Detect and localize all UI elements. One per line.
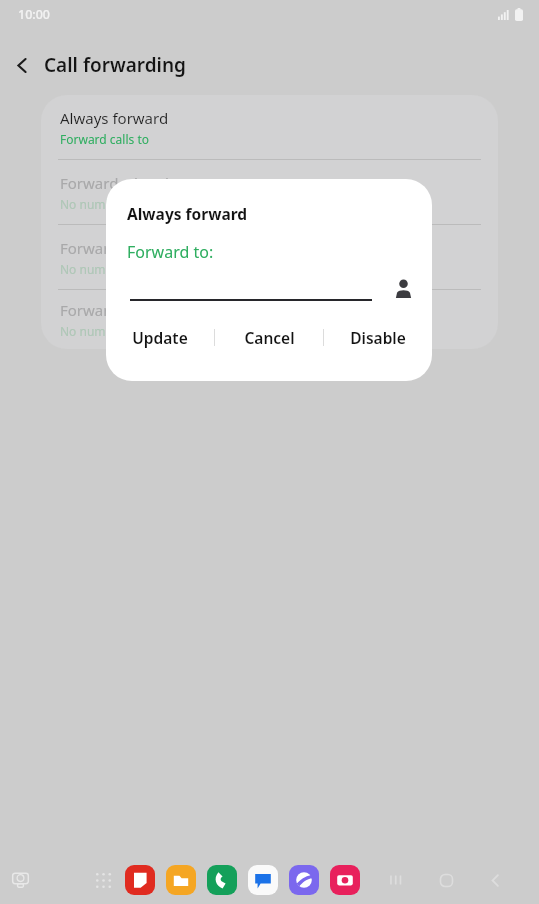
staticText: No number: [60, 261, 125, 277]
staticText: No number: [60, 323, 125, 339]
staticText: Always forward: [60, 108, 169, 128]
button[interactable]: Phone: [205, 863, 239, 897]
button[interactable]: Forward when unanswered: [41, 225, 498, 289]
button[interactable]: Disable: [324, 315, 432, 359]
button[interactable]: Apps: [86, 863, 120, 897]
staticText: Update: [132, 327, 188, 348]
button[interactable]: My Files: [164, 863, 198, 897]
button[interactable]: Update: [106, 315, 214, 359]
button[interactable]: Camera: [328, 863, 362, 897]
staticText: Forward when busy: [60, 173, 199, 193]
button[interactable]: Forward when busy: [41, 160, 498, 224]
button[interactable]: Notes: [123, 863, 157, 897]
staticText: Forward when unanswered: [60, 238, 253, 258]
button[interactable]: Messages: [246, 863, 280, 897]
button[interactable]: Always forward: [41, 95, 498, 159]
staticText: Call forwarding: [44, 52, 186, 78]
button[interactable]: Cancel: [215, 315, 323, 359]
staticText: Cancel: [244, 327, 295, 348]
staticText: Forward when unreachable: [60, 300, 253, 320]
button[interactable]: Forward when unreachable: [41, 290, 498, 349]
button[interactable]: Back: [0, 44, 44, 86]
staticText: 10:00: [18, 6, 51, 23]
button[interactable]: [130, 279, 372, 301]
staticText: Forward to:: [127, 241, 214, 263]
button[interactable]: Internet: [287, 863, 321, 897]
staticText: Disable: [350, 327, 406, 348]
button[interactable]: Choose contact: [386, 271, 420, 305]
staticText: Always forward: [127, 203, 248, 224]
button[interactable]: Screen capture: [2, 862, 38, 898]
staticText: No number: [60, 196, 125, 212]
staticText: Forward calls to: [60, 131, 149, 147]
